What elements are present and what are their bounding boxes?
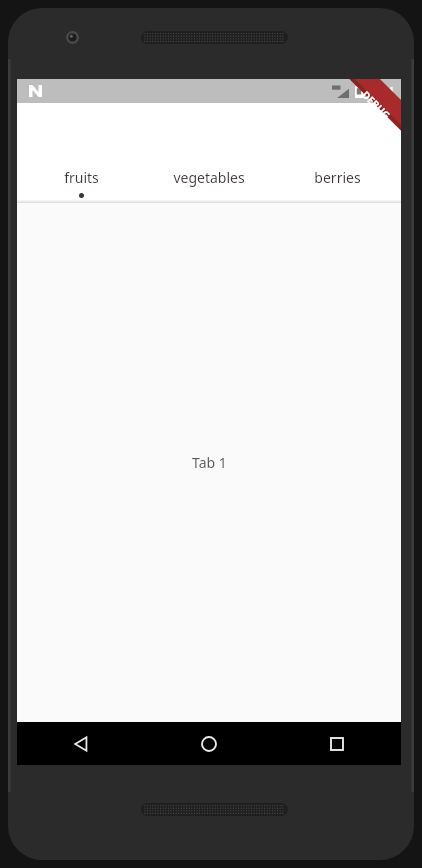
button[interactable]: berries xyxy=(273,157,401,203)
button[interactable]: Home xyxy=(145,722,273,765)
staticText: berries xyxy=(314,168,361,187)
staticText: fruits xyxy=(64,168,99,187)
button[interactable]: Recent apps xyxy=(273,722,401,765)
staticText: Tab 1 xyxy=(192,453,227,472)
staticText: 4:04 xyxy=(368,82,394,100)
staticText: DEBUG xyxy=(359,88,394,122)
staticText: vegetables xyxy=(173,168,245,187)
button[interactable]: Back xyxy=(17,722,145,765)
button[interactable]: vegetables xyxy=(145,157,273,203)
button[interactable]: fruits xyxy=(17,157,145,203)
